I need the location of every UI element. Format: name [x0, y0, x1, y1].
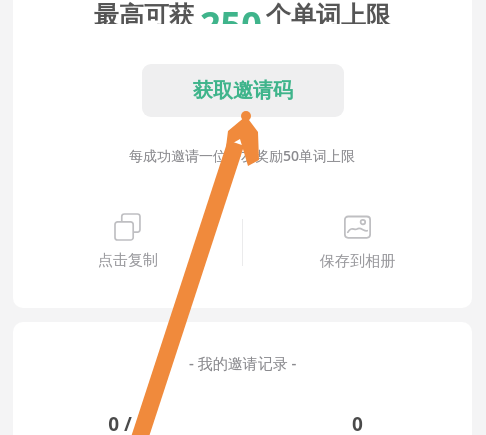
staticText: - 我的邀请记录 - [189, 353, 297, 373]
button[interactable]: Copy invite code [13, 207, 242, 277]
staticText: 250 [200, 0, 262, 24]
staticText: 0 [352, 411, 363, 435]
button[interactable]: Save to album [243, 207, 472, 277]
staticText: 保存到相册 [320, 252, 395, 271]
staticText: 点击复制 [98, 251, 158, 270]
button[interactable]: 获取邀请码 [142, 64, 344, 117]
staticText: 获取邀请码 [193, 78, 293, 103]
staticText: 个单词上限 [266, 0, 391, 24]
staticText: 最高可获 [94, 0, 194, 24]
staticText: 0 / 5 [108, 411, 148, 435]
staticText: 每成功邀请一位好友奖励50单词上限 [129, 146, 356, 165]
